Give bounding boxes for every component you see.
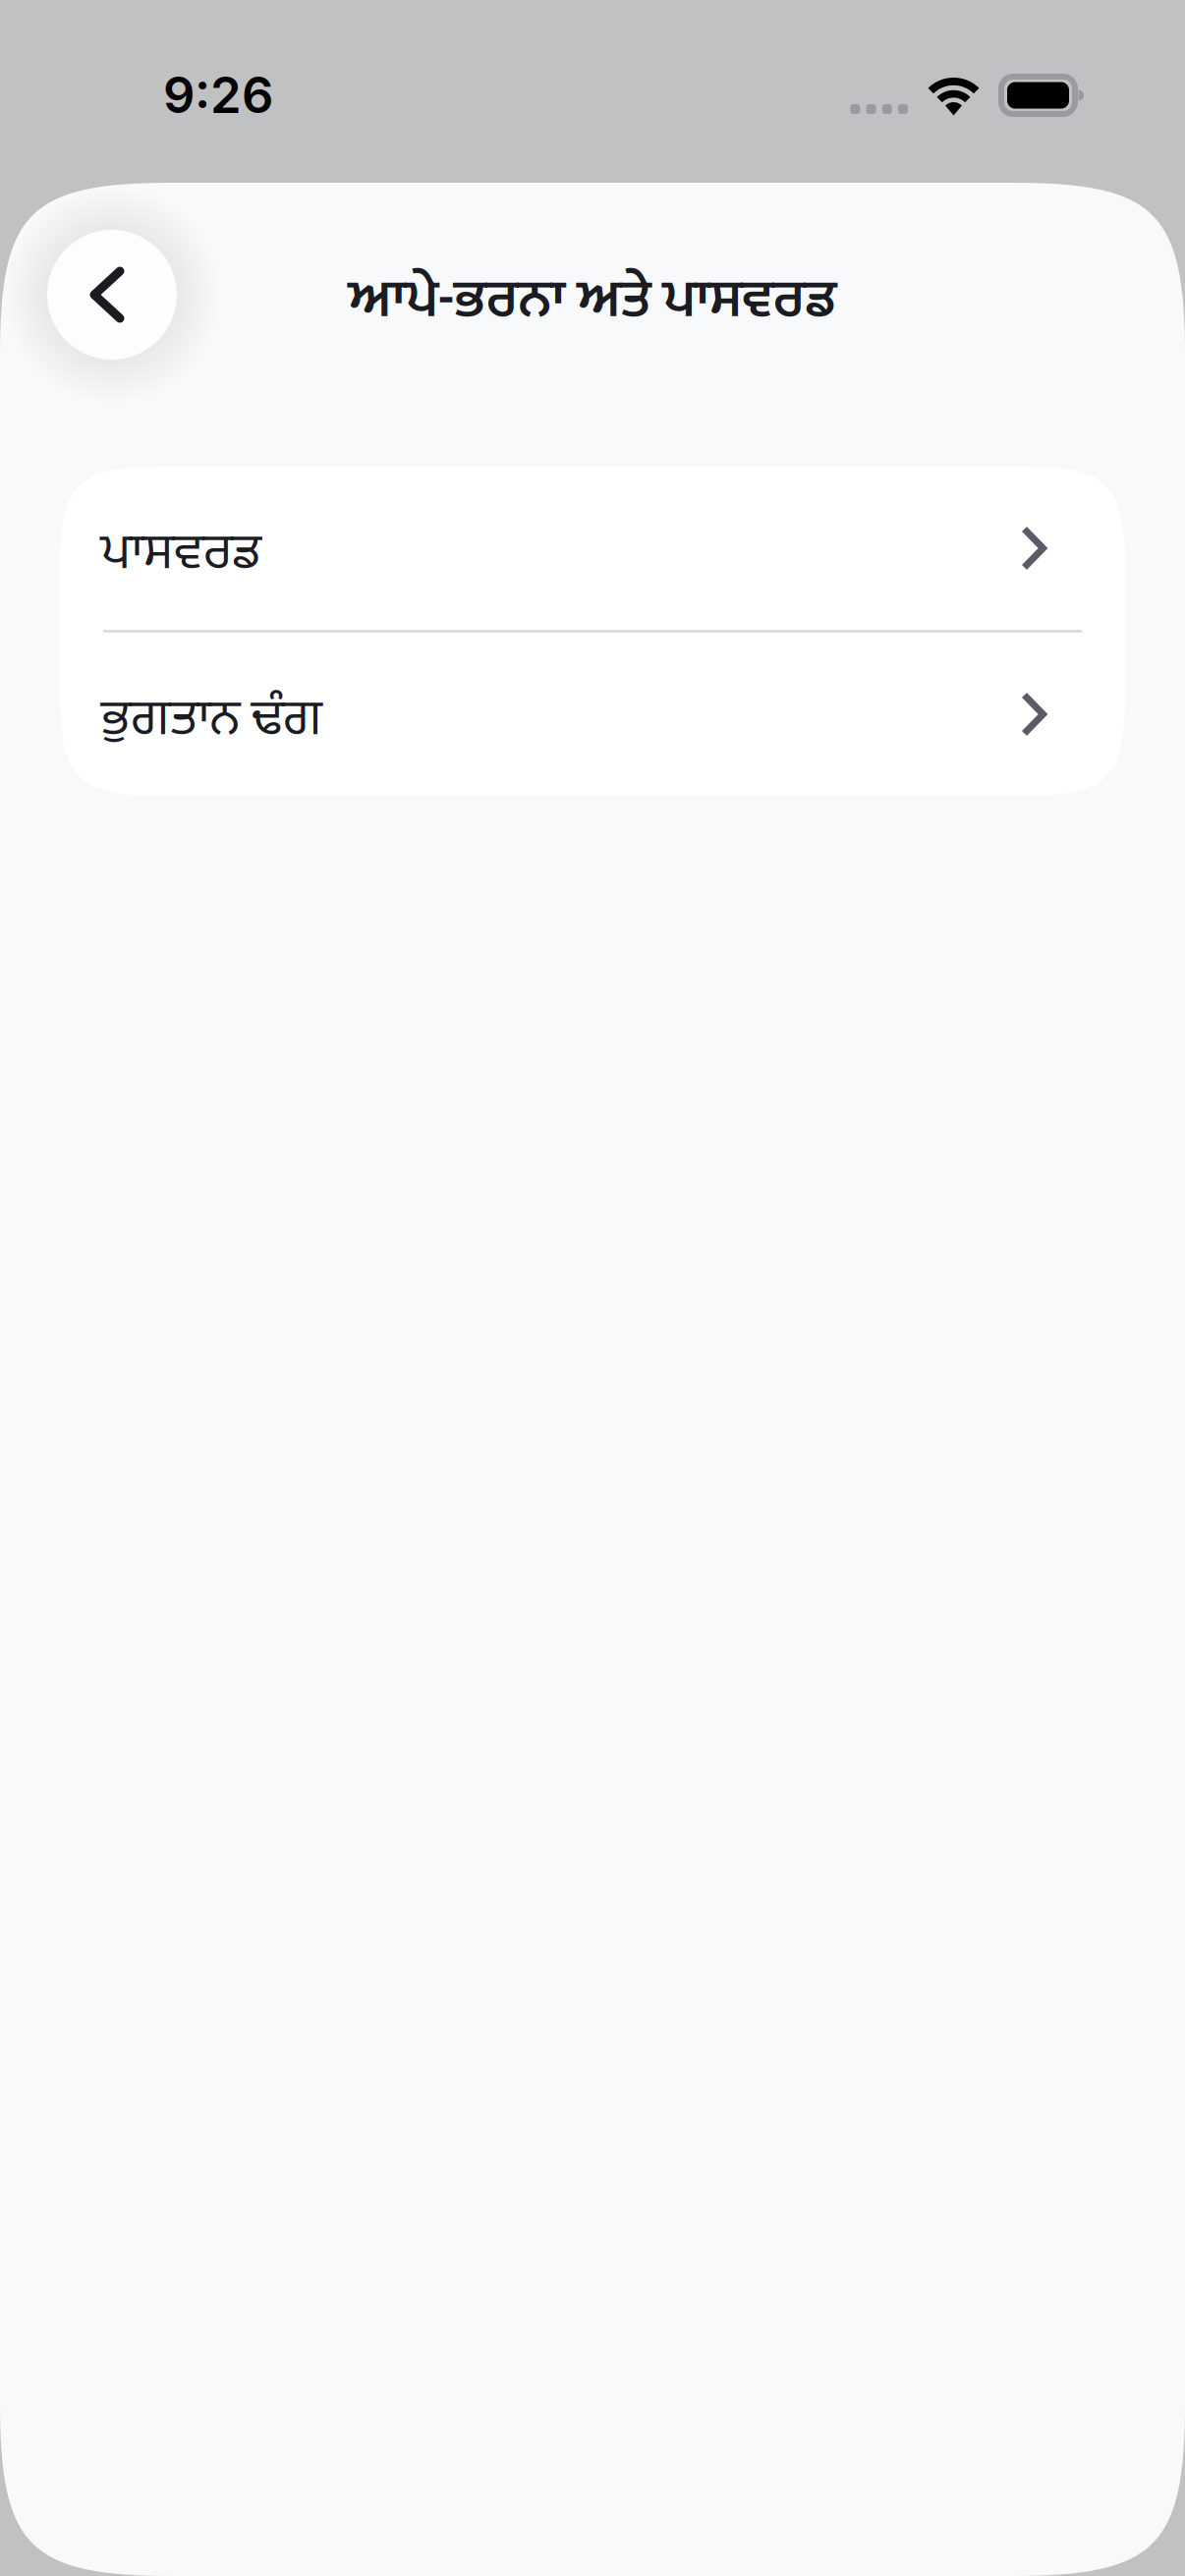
staticText: ਭੁਗਤਾਨ ਢੰਗ — [101, 674, 322, 763]
staticText: ਆਪੇ-ਭਰਨਾ ਅਤੇ ਪਾਸਵਰਡ — [349, 252, 836, 346]
button[interactable]: ਭੁਗਤਾਨ ਢੰਗ — [60, 633, 1125, 796]
staticText: ਪਾਸਵਰਡ — [101, 508, 260, 597]
button[interactable]: ਪਾਸਵਰਡ — [60, 467, 1125, 630]
button[interactable]: Back — [47, 230, 177, 360]
staticText: 9:26 — [163, 65, 273, 125]
